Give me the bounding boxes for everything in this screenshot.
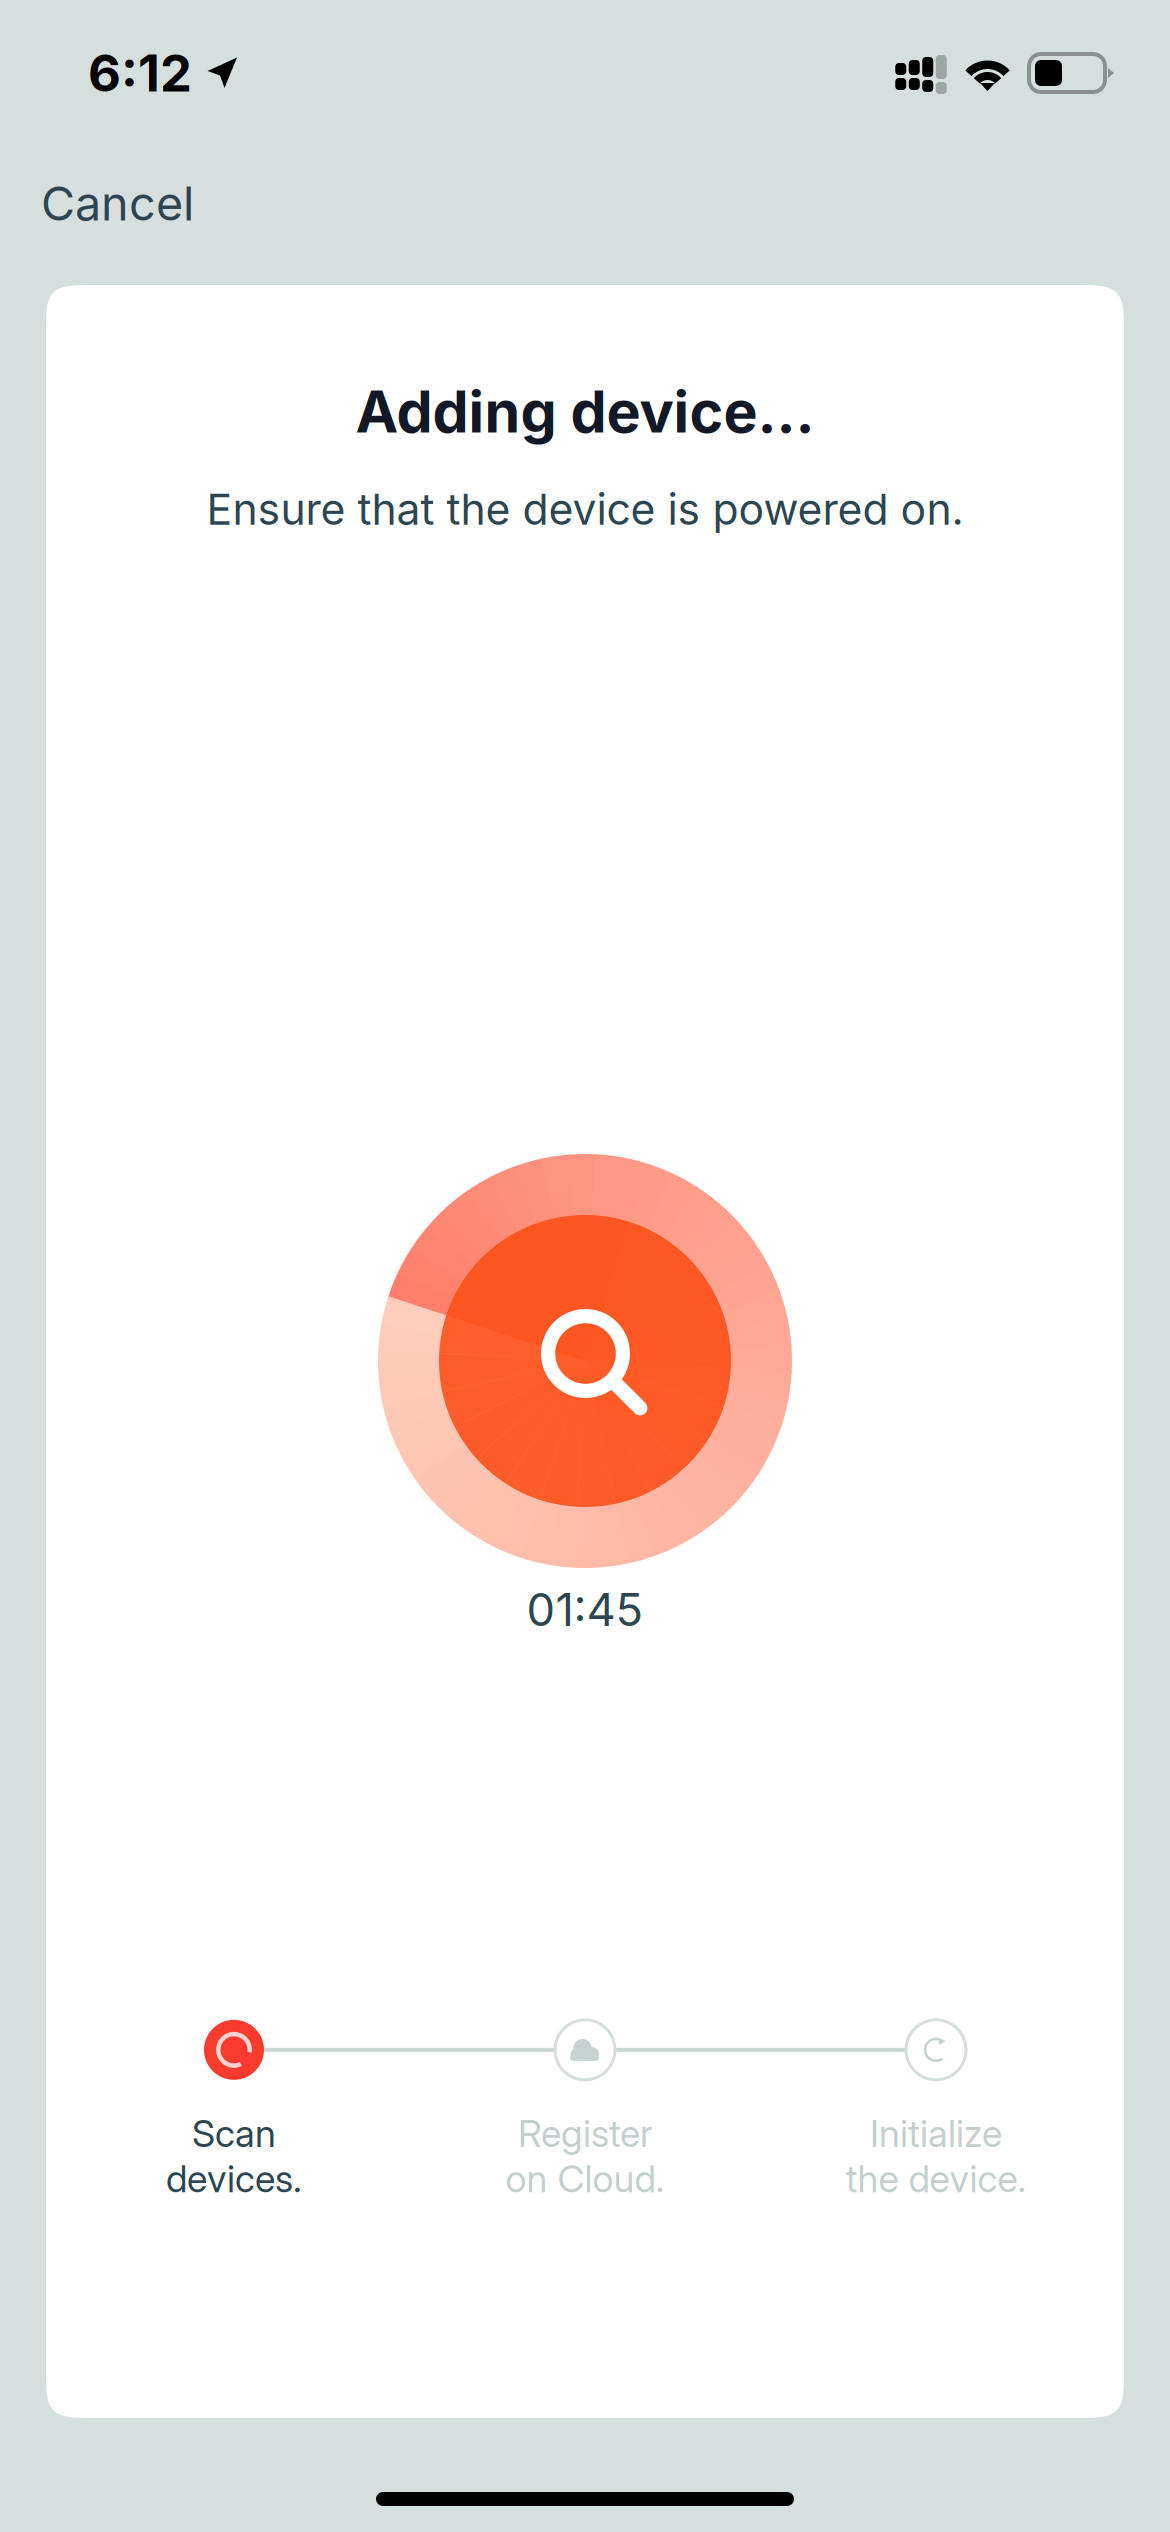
staticText: the device. <box>845 2156 1026 2201</box>
staticText: Ensure that the device is powered on. <box>206 483 963 535</box>
button[interactable]: Cancel <box>0 163 224 268</box>
staticText: on Cloud. <box>505 2156 664 2201</box>
staticText: 6:12 <box>88 42 192 104</box>
staticText: Cancel <box>41 175 194 232</box>
staticText: Initialize <box>870 2111 1002 2156</box>
staticText: Register <box>518 2111 652 2156</box>
staticText: Adding device... <box>355 377 814 446</box>
staticText: Scan <box>192 2111 276 2156</box>
staticText: 01:45 <box>526 1582 643 1637</box>
staticText: devices. <box>166 2156 302 2201</box>
